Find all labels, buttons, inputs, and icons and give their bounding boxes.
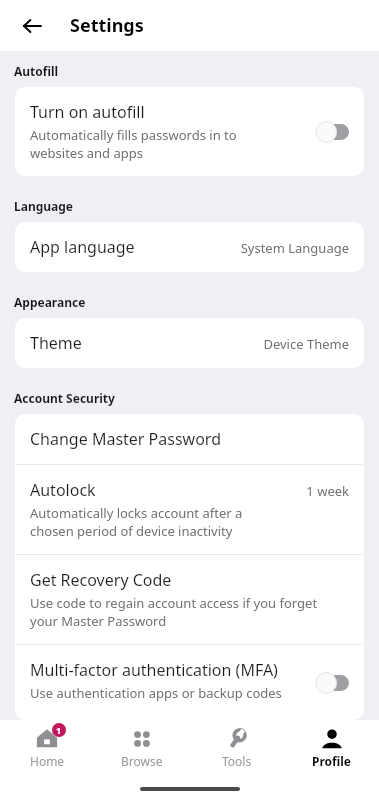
staticText: Settings (70, 13, 144, 38)
staticText: Get Recovery Code (30, 569, 172, 591)
staticText: Multi-factor authentication (MFA) (30, 659, 278, 681)
staticText: Use authentication apps or backup codes … (30, 684, 282, 706)
staticText: Automatically fills passwords in to webs… (30, 126, 237, 162)
staticText: Turn on autofill (30, 101, 145, 123)
staticText: 1 (56, 724, 62, 736)
staticText: Change Master Password (30, 428, 221, 450)
button[interactable]: Tools (189, 720, 284, 778)
button[interactable]: Multi-factor authentication (MFA) (15, 645, 364, 720)
button[interactable]: App language (15, 222, 364, 272)
button[interactable]: Get Recovery Code (15, 555, 364, 644)
staticText: Language (14, 198, 74, 214)
staticText: Device Theme (263, 335, 349, 353)
staticText: Automatically locks account after a chos… (30, 504, 243, 540)
staticText: System Language (240, 239, 349, 257)
button[interactable]: Change Master Password (15, 414, 364, 464)
staticText: 1 week (306, 482, 349, 500)
button[interactable]: Browse (94, 720, 189, 778)
button[interactable]: Autolock (15, 465, 364, 554)
button[interactable]: Theme (15, 318, 364, 368)
staticText: App language (30, 236, 135, 258)
staticText: Autofill (14, 63, 59, 79)
staticText: Home (30, 753, 65, 769)
button[interactable]: 1 (0, 720, 94, 778)
staticText: Theme (30, 332, 82, 354)
staticText: Browse (121, 753, 163, 769)
button[interactable]: Toggle (315, 672, 349, 694)
staticText: Tools (222, 753, 252, 769)
staticText: Use code to regain account access if you… (30, 594, 318, 630)
staticText: Profile (312, 753, 352, 769)
button[interactable]: Back (14, 8, 50, 44)
button[interactable]: Profile (284, 720, 379, 778)
button[interactable]: Toggle (315, 121, 349, 143)
button[interactable]: Turn on autofill (15, 87, 364, 176)
staticText: Account Security (14, 390, 115, 406)
staticText: Appearance (14, 294, 86, 310)
staticText: Autolock (30, 479, 96, 501)
